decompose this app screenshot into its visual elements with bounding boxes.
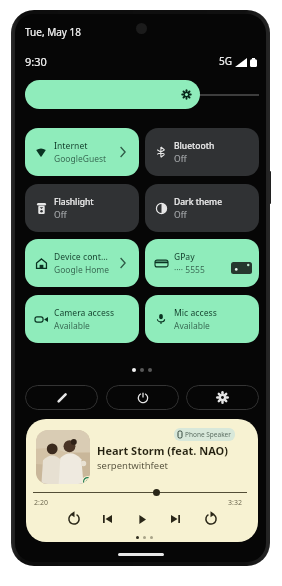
- button[interactable]: Phone Speaker: [174, 428, 235, 441]
- staticText: Off: [174, 209, 187, 221]
- button[interactable]: Play: [133, 510, 151, 528]
- button[interactable]: Brightness: [25, 80, 200, 109]
- staticText: Mic access: [174, 307, 217, 319]
- staticText: Flashlight: [54, 196, 94, 208]
- button[interactable]: Power: [106, 385, 179, 410]
- staticText: Google Home: [54, 264, 110, 276]
- button[interactable]: Next track: [166, 510, 184, 528]
- staticText: 3:32: [228, 498, 242, 508]
- staticText: GPay: [174, 251, 195, 263]
- staticText: Tue, May 18: [25, 25, 81, 39]
- button[interactable]: Forward 30 seconds: [202, 510, 220, 528]
- staticText: Available: [54, 320, 90, 332]
- staticText: Camera access: [54, 307, 115, 319]
- staticText: Dark theme: [174, 196, 223, 208]
- button[interactable]: Bluetooth: [145, 128, 259, 176]
- button[interactable]: Replay 5 seconds: [65, 510, 83, 528]
- staticText: 2:20: [34, 498, 48, 508]
- button[interactable]: Edit tiles: [25, 385, 98, 410]
- staticText: Bluetooth: [174, 140, 215, 152]
- staticText: Off: [54, 209, 67, 221]
- staticText: 9:30: [25, 54, 47, 69]
- button[interactable]: Flashlight: [25, 184, 139, 232]
- staticText: GoogleGuest: [54, 153, 107, 165]
- button[interactable]: Previous track: [98, 510, 116, 528]
- button[interactable]: Settings: [186, 385, 259, 410]
- staticText: Available: [174, 320, 210, 332]
- button[interactable]: Dark theme: [145, 184, 259, 232]
- staticText: Device cont...: [54, 251, 108, 263]
- staticText: 5G: [219, 54, 232, 68]
- button[interactable]: Internet: [25, 128, 139, 176]
- staticText: serpentwithfeet: [97, 459, 168, 472]
- staticText: Phone Speaker: [185, 430, 231, 439]
- button[interactable]: GPay: [145, 239, 259, 287]
- button[interactable]: Mic access: [145, 295, 259, 343]
- staticText: Off: [174, 153, 187, 165]
- staticText: Internet: [54, 140, 88, 152]
- button[interactable]: Camera access: [25, 295, 139, 343]
- staticText: ···· 5555: [174, 264, 205, 276]
- staticText: Heart Storm (feat. NAO): [97, 443, 228, 458]
- button[interactable]: Device cont...: [25, 239, 139, 287]
